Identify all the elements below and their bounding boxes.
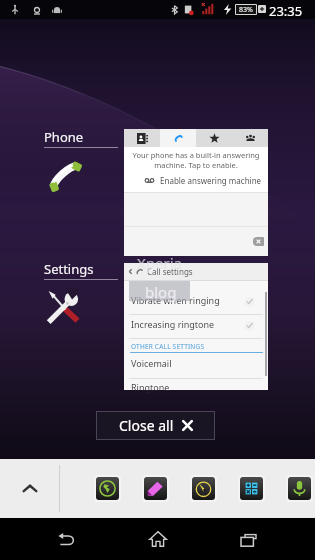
staticText: blog <box>145 282 177 302</box>
staticText: Xperia <box>137 253 182 273</box>
button[interactable] <box>196 129 232 147</box>
button[interactable]: Browser <box>96 477 119 500</box>
button[interactable]: Notes <box>144 477 167 500</box>
button[interactable] <box>160 129 196 147</box>
button[interactable]: Timer <box>192 477 215 500</box>
button[interactable] <box>232 129 268 147</box>
staticText: Vibrate when ringing <box>131 294 220 306</box>
staticText: Voicemail <box>131 357 172 369</box>
staticText: Increasing ringtone <box>131 318 215 330</box>
staticText: Your phone has a built-in answering mach… <box>124 150 268 170</box>
staticText: Phone <box>44 128 84 146</box>
staticText: Call settings <box>147 266 193 277</box>
button[interactable]: Enable answering machine <box>124 171 268 189</box>
button[interactable]: Increasing ringtone <box>124 318 268 336</box>
staticText: Settings <box>44 260 94 278</box>
button[interactable]: Expand small apps <box>0 459 59 518</box>
button[interactable]: Back <box>40 518 92 560</box>
button[interactable] <box>124 129 160 147</box>
staticText: Close all <box>119 416 174 435</box>
button[interactable]: Close all <box>96 411 215 440</box>
button[interactable]: Vibrate when ringing <box>124 294 268 312</box>
button[interactable]: Calculator <box>240 477 263 500</box>
staticText: 83% <box>239 5 253 14</box>
staticText: Ringtone <box>131 381 170 393</box>
button[interactable]: Call settings <box>124 263 268 390</box>
button[interactable]: Recent apps <box>223 518 275 560</box>
button[interactable]: Recorder <box>288 477 311 500</box>
button[interactable]: Voicemail <box>124 357 268 375</box>
button[interactable]: Home <box>132 518 184 560</box>
button[interactable]: Your phone has a built-in answering mach… <box>124 129 268 256</box>
staticText: OTHER CALL SETTINGS <box>131 342 205 351</box>
staticText: 23:35 <box>269 2 303 20</box>
button[interactable]: Ringtone <box>124 381 268 399</box>
staticText: Enable answering machine <box>160 175 262 186</box>
button[interactable]: Close <box>253 237 264 246</box>
